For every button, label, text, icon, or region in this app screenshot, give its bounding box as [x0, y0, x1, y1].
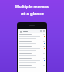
button[interactable]	[18, 64, 46, 69]
button[interactable]: Menu	[17, 22, 47, 72]
button[interactable]	[18, 57, 46, 64]
staticText: at a glance	[21, 11, 44, 17]
button[interactable]	[18, 40, 46, 45]
button[interactable]: Menu	[19, 30, 22, 33]
staticText: Multiple memos	[15, 4, 49, 10]
button[interactable]	[18, 45, 46, 52]
button[interactable]	[18, 52, 46, 57]
button[interactable]	[18, 33, 46, 40]
